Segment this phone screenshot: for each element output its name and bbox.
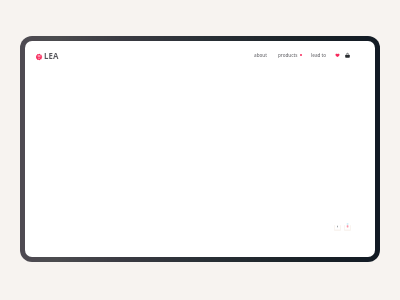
staticText: LEA — [44, 51, 59, 62]
button[interactable]: lead to — [311, 52, 327, 58]
button[interactable]: LEA — [36, 51, 59, 62]
staticText: lead to — [311, 52, 327, 58]
button[interactable]: Favorites — [334, 51, 341, 58]
button[interactable]: Shopping bag — [344, 52, 351, 59]
button[interactable]: about — [254, 52, 267, 58]
button[interactable] — [344, 225, 351, 231]
staticText: products — [278, 52, 298, 58]
button[interactable] — [334, 225, 341, 231]
button[interactable]: products — [278, 52, 302, 58]
staticText: about — [254, 52, 267, 58]
